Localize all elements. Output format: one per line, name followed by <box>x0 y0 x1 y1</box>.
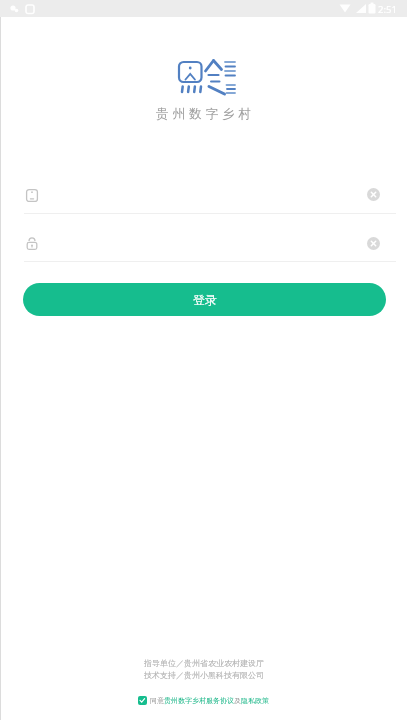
button[interactable]: 同意贵州数字乡村服务协议及隐私政策 <box>138 696 269 705</box>
button[interactable] <box>367 237 380 250</box>
staticText: 指导单位／贵州省农业农村建设厅 <box>144 658 264 668</box>
staticText: 同意贵州数字乡村服务协议及隐私政策 <box>150 696 269 705</box>
button[interactable] <box>0 166 407 213</box>
staticText: 技术支持／贵州小黑科技有限公司 <box>144 670 264 680</box>
staticText: 贵州数字乡村 <box>2 106 407 122</box>
button[interactable]: 登录 <box>23 283 386 316</box>
button[interactable] <box>0 214 407 261</box>
staticText: 登录 <box>193 292 217 307</box>
button[interactable] <box>367 188 380 201</box>
staticText: 2:51 <box>378 3 397 16</box>
